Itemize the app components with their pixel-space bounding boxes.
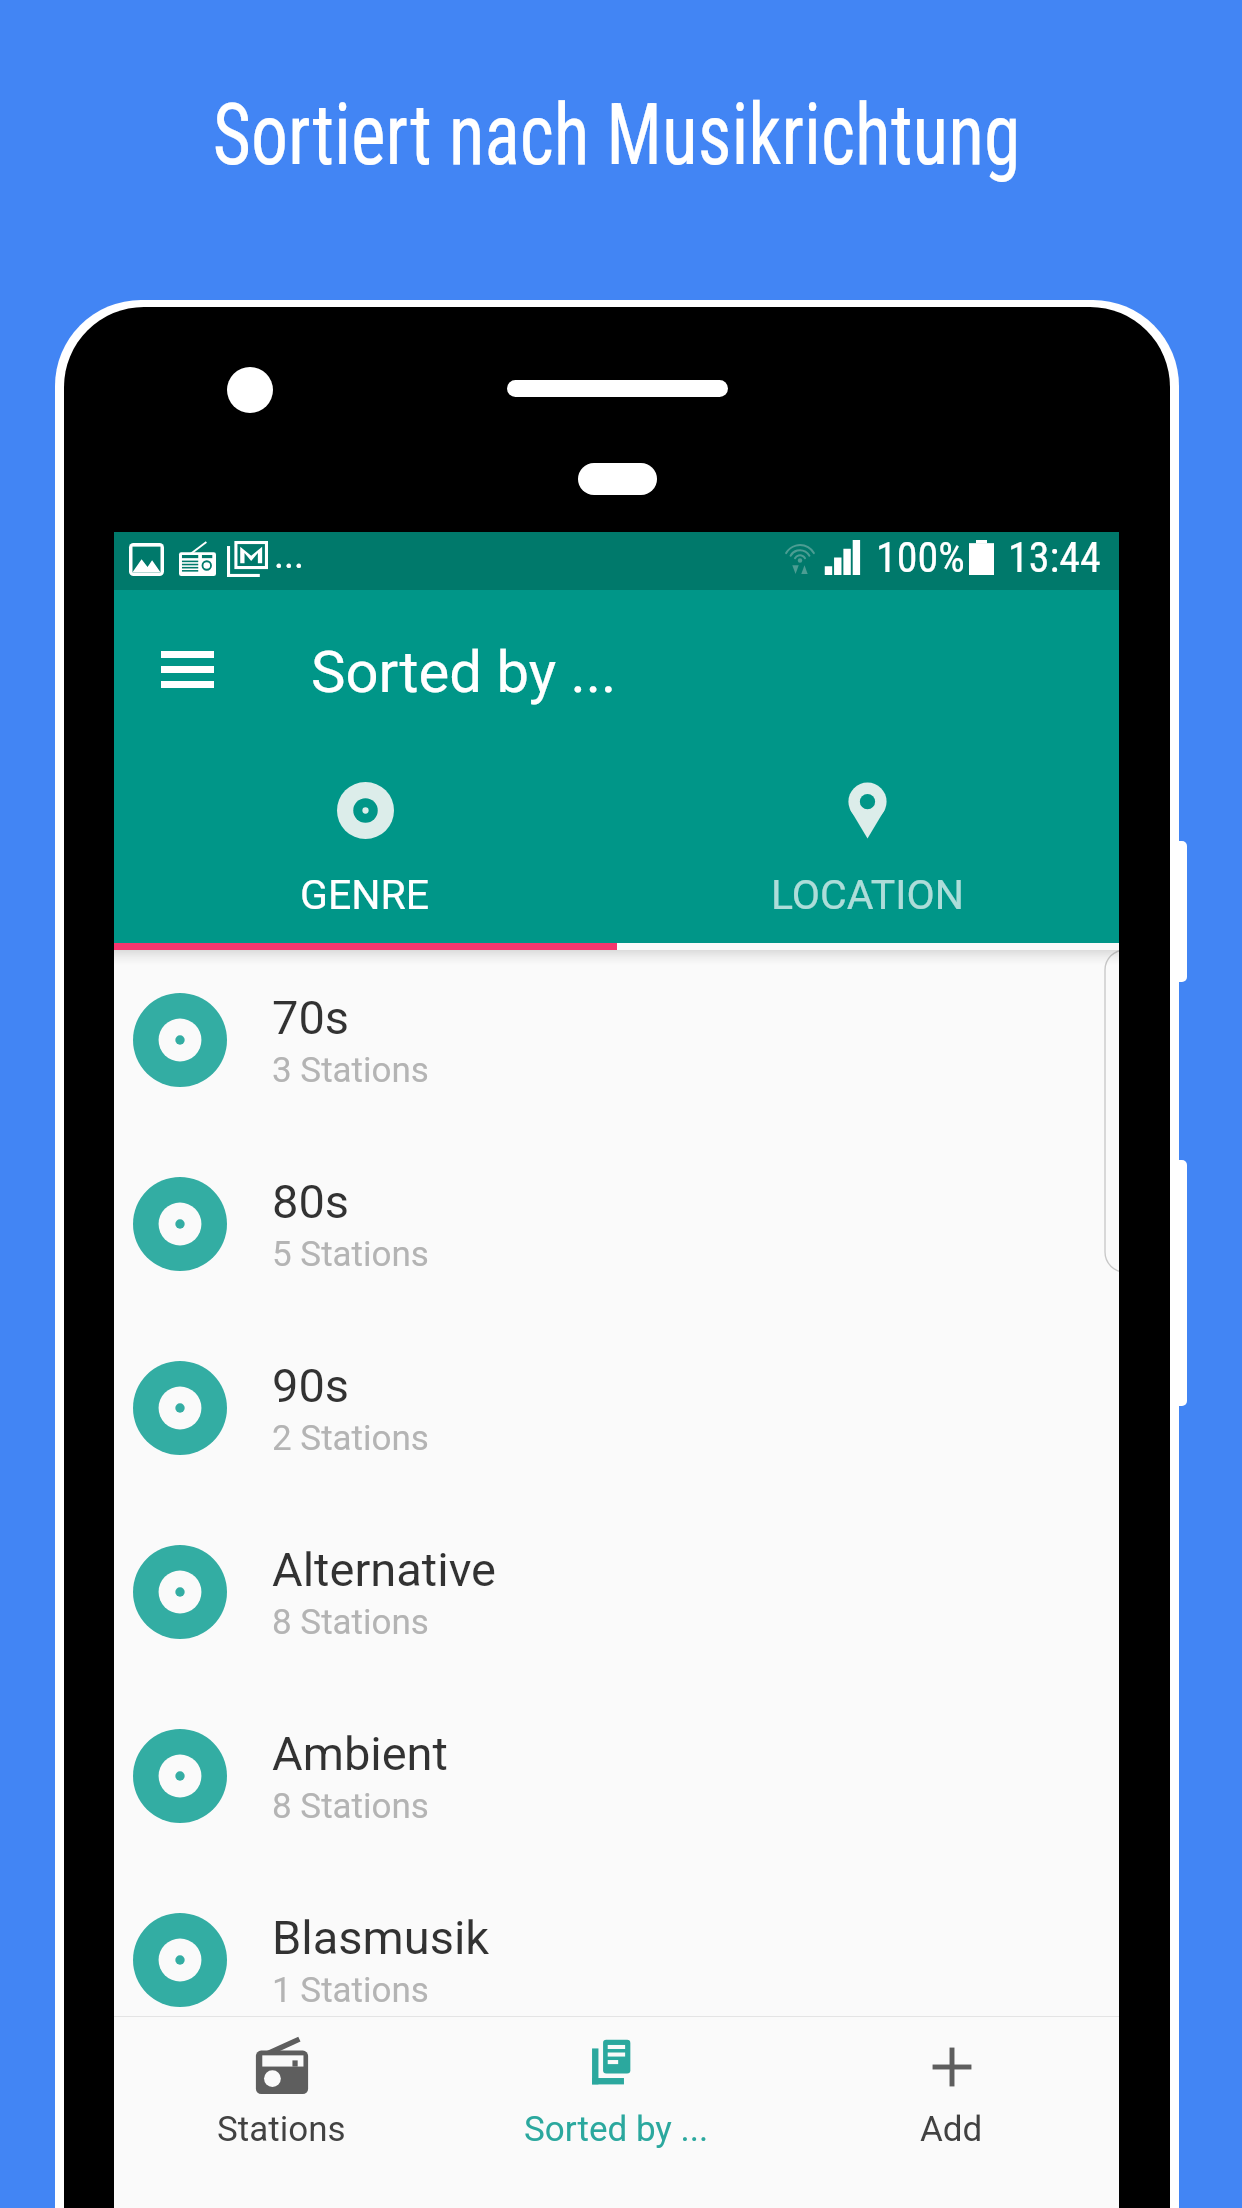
staticText: 80s xyxy=(272,1174,350,1229)
staticText: Add xyxy=(920,2109,983,2150)
staticText: Stations xyxy=(217,2109,346,2150)
staticText: 5 Stations xyxy=(272,1234,429,1275)
button[interactable]: Open navigation drawer xyxy=(139,629,236,710)
staticText: 8 Stations xyxy=(272,1786,429,1827)
button[interactable]: GENRE xyxy=(114,757,616,943)
button[interactable]: 80s xyxy=(114,1132,1119,1316)
staticText: Blasmusik xyxy=(272,1910,490,1965)
button[interactable]: Ambient xyxy=(114,1684,1119,1868)
button[interactable]: Add xyxy=(784,2016,1119,2208)
button[interactable]: LOCATION xyxy=(616,757,1119,943)
staticText: 90s xyxy=(272,1358,350,1413)
staticText: ... xyxy=(274,533,305,578)
button[interactable]: 90s xyxy=(114,1316,1119,1500)
staticText: LOCATION xyxy=(771,871,964,919)
button[interactable]: Alternative xyxy=(114,1500,1119,1684)
button[interactable]: Sorted by ... xyxy=(449,2016,784,2208)
button[interactable]: Stations xyxy=(114,2016,449,2208)
button[interactable]: 70s xyxy=(114,948,1119,1132)
staticText: Ambient xyxy=(272,1726,448,1781)
staticText: GENRE xyxy=(300,871,430,919)
staticText: 70s xyxy=(272,990,350,1045)
staticText: Alternative xyxy=(272,1542,497,1597)
button[interactable]: Blasmusik xyxy=(114,1868,1119,2052)
staticText: Sorted by ... xyxy=(524,2109,709,2150)
staticText: 8 Stations xyxy=(272,1602,429,1643)
staticText: Sortiert nach Musikrichtung xyxy=(212,85,1020,185)
staticText: 13:44 xyxy=(1008,533,1101,582)
staticText: 100% xyxy=(876,533,965,582)
staticText: 3 Stations xyxy=(272,1050,429,1091)
staticText: 1 Stations xyxy=(272,1970,429,2011)
staticText: Sorted by ... xyxy=(311,638,617,706)
staticText: 2 Stations xyxy=(272,1418,429,1459)
